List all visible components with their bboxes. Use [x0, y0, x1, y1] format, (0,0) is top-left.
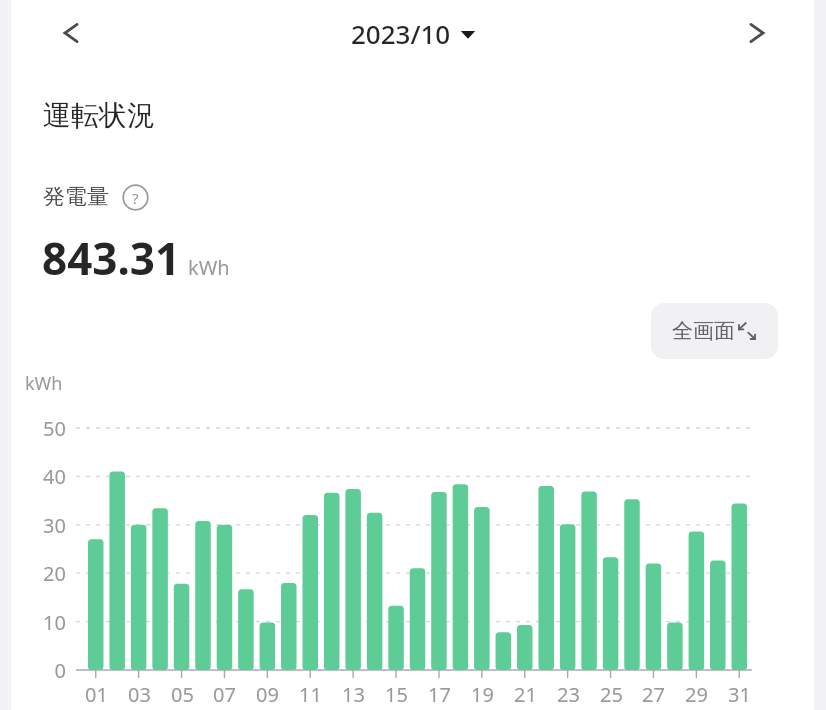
staticText: 11	[299, 681, 322, 708]
staticText: 21	[514, 681, 537, 708]
staticText: 09	[256, 681, 279, 708]
staticText: 07	[213, 681, 236, 708]
staticText: 15	[385, 681, 408, 708]
staticText: 843.31	[42, 228, 181, 288]
staticText: 27	[642, 681, 665, 708]
staticText: 31	[728, 681, 751, 708]
button[interactable]: Help	[122, 184, 149, 211]
staticText: 40	[43, 463, 66, 490]
staticText: 発電量	[43, 183, 109, 211]
staticText: ?	[132, 188, 139, 208]
staticText: kWh	[188, 254, 230, 281]
staticText: 20	[43, 560, 66, 587]
staticText: 30	[43, 512, 66, 539]
staticText: 25	[600, 681, 623, 708]
staticText: 運転状況	[43, 98, 155, 133]
staticText: 19	[471, 681, 494, 708]
staticText: kWh	[25, 371, 63, 396]
staticText: 全画面	[672, 318, 735, 344]
staticText: 0	[54, 657, 66, 684]
staticText: 03	[128, 681, 151, 708]
staticText: 50	[43, 415, 66, 442]
staticText: 2023/10	[351, 16, 451, 51]
staticText: 13	[342, 681, 365, 708]
staticText: 17	[428, 681, 451, 708]
staticText: 01	[85, 681, 108, 708]
button[interactable]: 2023/10	[343, 12, 484, 55]
staticText: 05	[171, 681, 194, 708]
staticText: 10	[43, 609, 66, 636]
staticText: 29	[685, 681, 708, 708]
button[interactable]: 全画面	[651, 303, 778, 359]
button[interactable]: Previous month	[48, 10, 94, 56]
staticText: 23	[557, 681, 580, 708]
button[interactable]: Next month	[734, 10, 780, 56]
